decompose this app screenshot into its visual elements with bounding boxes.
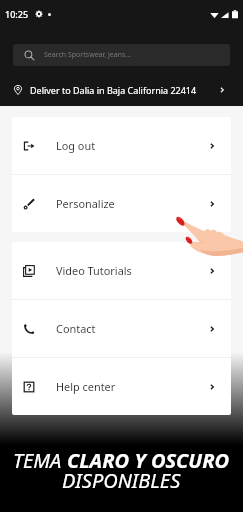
staticText: 10:25 <box>5 8 29 20</box>
button[interactable]: Search Sportswear, jeans... <box>13 44 230 66</box>
staticText: DISPONIBLES <box>62 467 181 494</box>
button[interactable]: Help center <box>12 358 231 415</box>
staticText: Deliver to Dalia in Baja California 2241… <box>30 84 197 96</box>
button[interactable]: Deliver to Dalia in Baja California 2241… <box>0 73 243 107</box>
staticText: Contact <box>56 321 96 336</box>
staticText: TEMA <box>13 447 67 474</box>
button[interactable]: Video Tutorials <box>12 242 231 299</box>
staticText: Personalize <box>56 196 115 211</box>
staticText: Help center <box>56 379 116 394</box>
button[interactable]: Log out <box>12 117 231 174</box>
staticText: Log out <box>56 138 96 153</box>
button[interactable]: Personalize <box>12 175 231 232</box>
staticText: Search Sportswear, jeans... <box>44 50 131 60</box>
staticText: CLARO Y OSCURO <box>67 447 230 474</box>
staticText: Video Tutorials <box>56 263 132 278</box>
button[interactable]: Contact <box>12 300 231 357</box>
